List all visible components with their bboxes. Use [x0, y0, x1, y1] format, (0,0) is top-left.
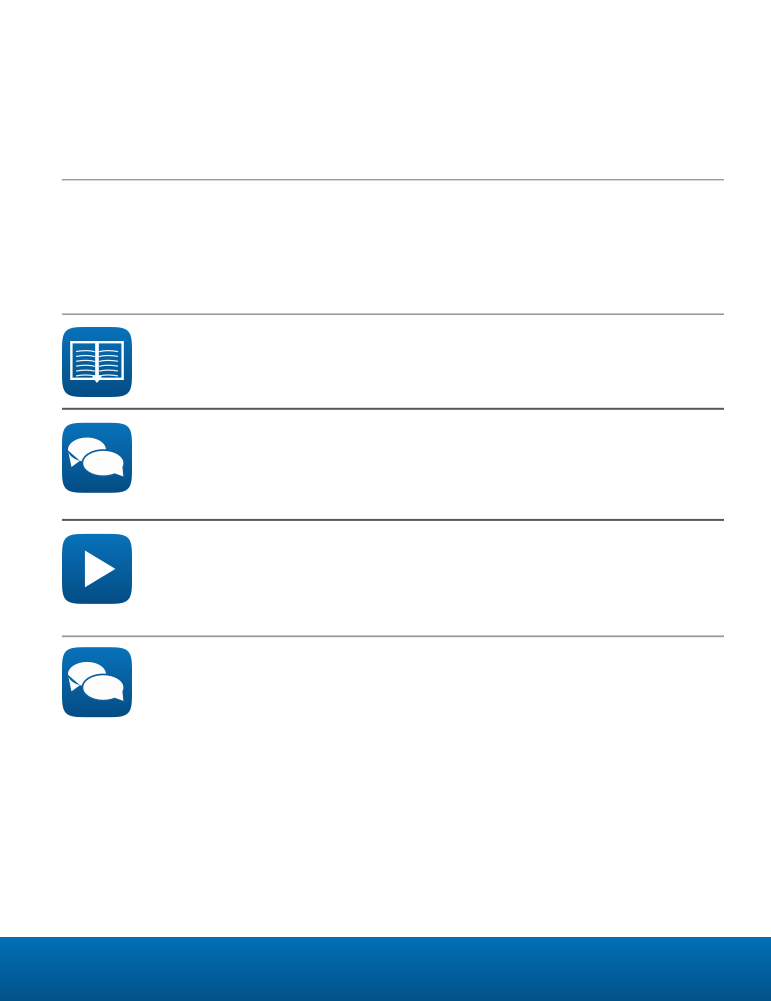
button[interactable]: Comments — [0, 637, 771, 719]
button[interactable]: Read — [0, 315, 771, 408]
button[interactable]: Discuss — [0, 410, 771, 519]
button[interactable]: Watch — [0, 521, 771, 635]
